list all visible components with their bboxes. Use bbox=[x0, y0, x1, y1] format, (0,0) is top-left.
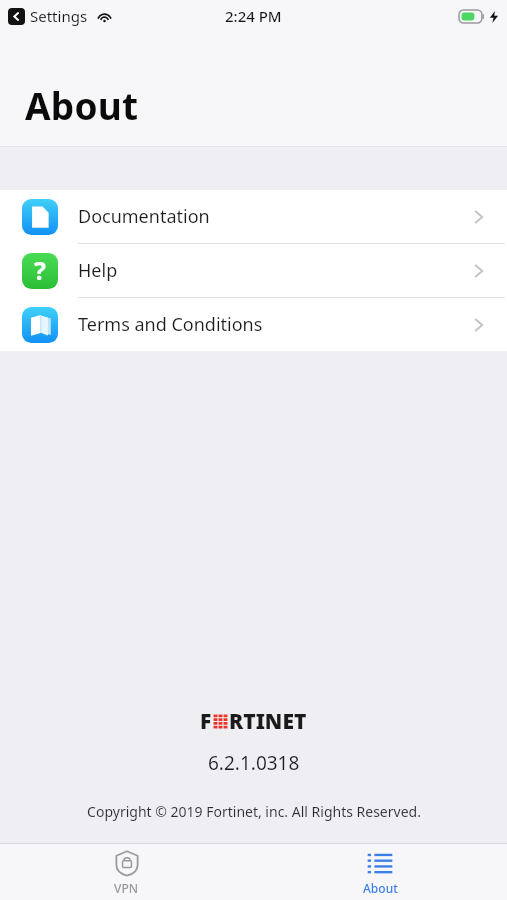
staticText: Terms and Conditions bbox=[78, 312, 487, 337]
staticText: 6.2.1.0318 bbox=[208, 750, 300, 776]
staticText: Settings bbox=[30, 6, 88, 26]
staticText: Copyright © 2019 Fortinet, inc. All Righ… bbox=[87, 802, 421, 821]
button[interactable]: VPN bbox=[0, 844, 253, 900]
staticText: 2:24 PM bbox=[225, 6, 282, 26]
button[interactable]: Terms and Conditions bbox=[0, 298, 507, 351]
staticText: RTINET bbox=[229, 707, 307, 736]
staticText: VPN bbox=[114, 880, 139, 896]
button[interactable]: Settings bbox=[6, 6, 114, 26]
staticText: About bbox=[25, 80, 139, 130]
staticText: ? bbox=[34, 253, 46, 287]
staticText: About bbox=[363, 880, 398, 896]
button[interactable]: Documentation bbox=[0, 190, 507, 243]
staticText: F bbox=[200, 707, 212, 736]
staticText: Help bbox=[78, 258, 487, 283]
staticText: Documentation bbox=[78, 204, 487, 229]
button[interactable]: ? bbox=[0, 244, 507, 297]
button[interactable]: About bbox=[253, 844, 507, 900]
